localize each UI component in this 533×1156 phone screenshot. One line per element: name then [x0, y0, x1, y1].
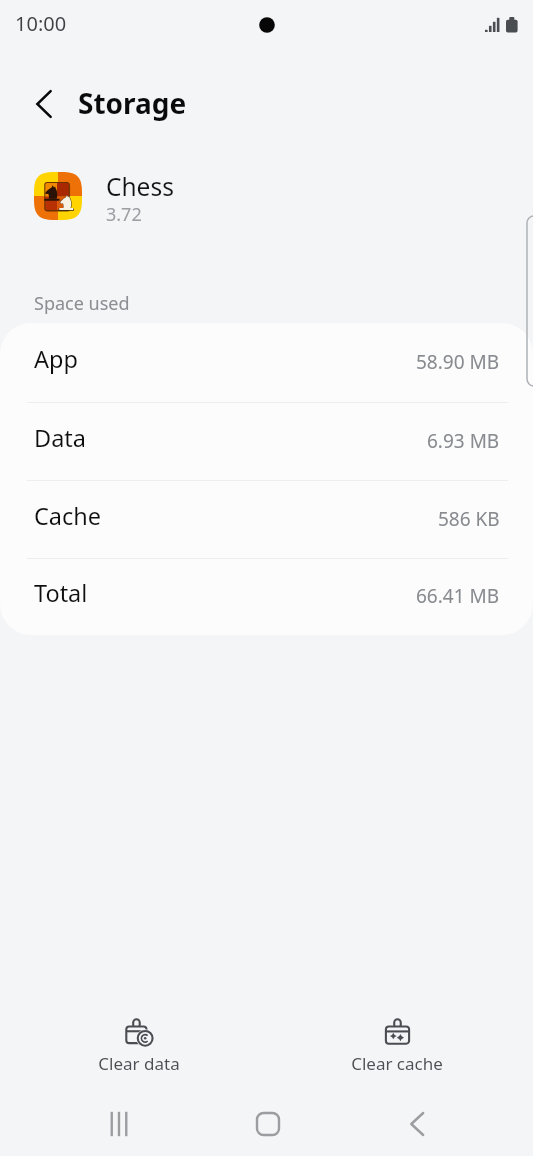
button[interactable]: Cache: [0, 481, 533, 559]
staticText: 58.90 MB: [416, 349, 500, 375]
staticText: 10:00: [15, 10, 67, 37]
staticText: App: [34, 343, 78, 375]
button[interactable]: Data: [0, 403, 533, 481]
staticText: 586 KB: [438, 506, 500, 532]
staticText: Data: [34, 422, 87, 454]
button[interactable]: Home: [245, 1101, 290, 1146]
staticText: Clear data: [98, 1052, 180, 1075]
staticText: 3.72: [106, 202, 142, 227]
staticText: Cache: [34, 500, 102, 532]
button[interactable]: Clear data: [41, 994, 237, 1094]
button[interactable]: App: [0, 323, 533, 403]
button[interactable]: Back: [394, 1101, 439, 1146]
staticText: Chess: [106, 170, 174, 203]
button[interactable]: Clear cache: [299, 994, 495, 1094]
staticText: Clear cache: [351, 1052, 443, 1075]
button[interactable]: Recent apps: [96, 1101, 141, 1146]
button[interactable]: Total: [0, 559, 533, 635]
staticText: Space used: [34, 291, 130, 316]
staticText: 66.41 MB: [416, 583, 500, 609]
staticText: Total: [34, 577, 88, 609]
staticText: 6.93 MB: [427, 428, 500, 454]
staticText: Storage: [78, 84, 187, 122]
button[interactable]: Navigate up: [22, 82, 66, 126]
